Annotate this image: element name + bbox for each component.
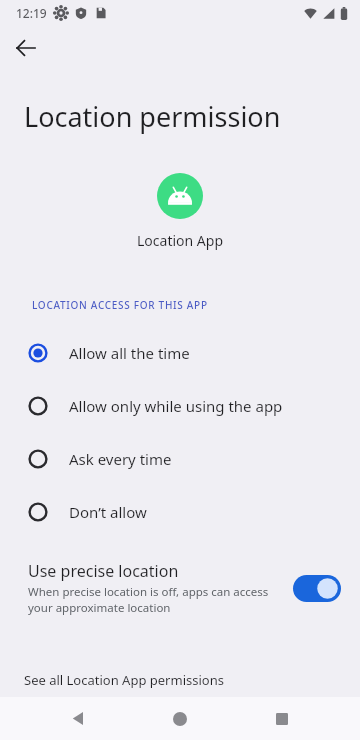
staticText: Don’t allow [69, 502, 147, 522]
button[interactable]: Use precise location [0, 554, 360, 621]
button[interactable]: Allow only while using the app [0, 379, 360, 432]
button[interactable]: Ask every time [0, 432, 360, 485]
staticText: See all Location App permissions [24, 671, 224, 689]
button[interactable]: Home [156, 697, 204, 740]
staticText: LOCATION ACCESS FOR THIS APP [32, 298, 208, 312]
button[interactable]: Back [54, 697, 102, 740]
button[interactable]: See all Location App permissions [0, 663, 360, 697]
staticText: Location permission [24, 98, 281, 135]
staticText: 12:19 [16, 5, 47, 21]
staticText: Use precise location [28, 560, 179, 582]
button[interactable]: Don’t allow [0, 485, 360, 538]
staticText: Location App [137, 231, 223, 250]
staticText: When precise location is off, apps can a… [28, 584, 280, 615]
staticText: Allow all the time [69, 343, 190, 363]
button[interactable]: Recent apps [258, 697, 306, 740]
button[interactable]: Allow all the time [0, 326, 360, 379]
staticText: Allow only while using the app [69, 396, 283, 416]
button[interactable]: Use precise location toggle [292, 573, 342, 603]
button[interactable]: Back [6, 28, 46, 68]
staticText: Ask every time [69, 449, 172, 469]
